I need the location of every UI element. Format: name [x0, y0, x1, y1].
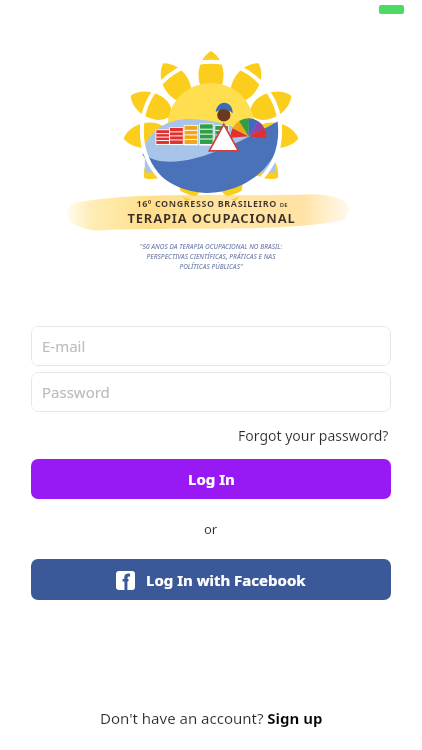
button[interactable]: Log In	[31, 459, 391, 499]
button[interactable]: Don't have an account? Sign up	[94, 704, 329, 732]
staticText: "50 ANOS DA TERAPIA OCUPACIONAL NO BRASI…	[61, 242, 361, 271]
staticText: Forgot your password?	[238, 426, 389, 445]
staticText: TERAPIA OCUPACIONAL	[127, 209, 296, 227]
staticText: Log In with Facebook	[146, 570, 306, 590]
staticText: or	[204, 520, 218, 538]
staticText: E-mail	[42, 336, 86, 356]
button[interactable]: Password	[31, 372, 391, 412]
staticText: Password	[42, 382, 110, 402]
button[interactable]: E-mail	[31, 326, 391, 366]
button[interactable]: Forgot your password?	[236, 424, 391, 447]
staticText: 16º CONGRESSO BRASILEIRO DE	[136, 197, 288, 209]
button[interactable]: Log In with Facebook	[31, 559, 391, 600]
staticText: Log In	[188, 469, 235, 489]
staticText: Don't have an account? Sign up	[100, 708, 323, 728]
